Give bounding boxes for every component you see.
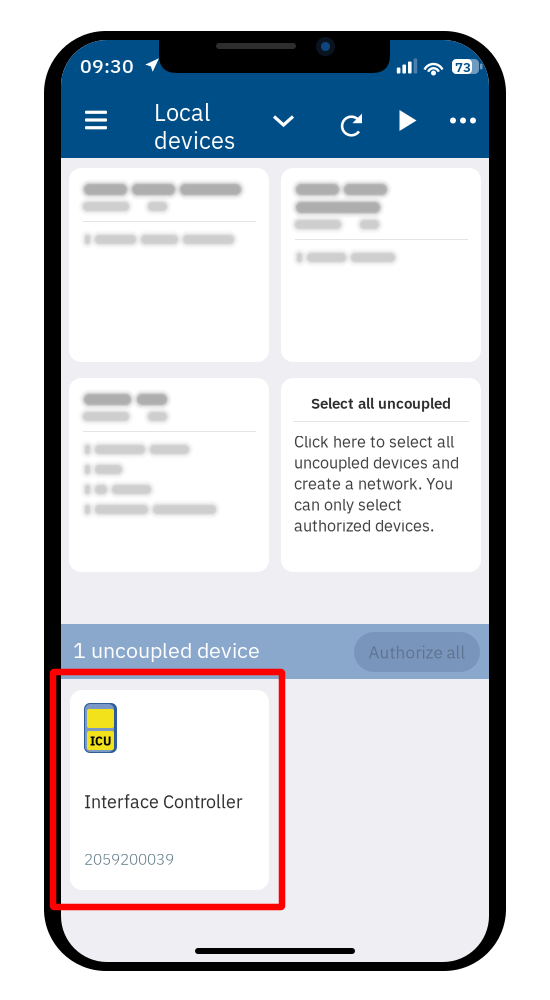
staticText: 09:30 <box>80 53 134 78</box>
button[interactable]: Play <box>398 109 418 132</box>
staticText: Select all uncoupled <box>311 393 451 413</box>
button[interactable]: More options <box>450 117 476 124</box>
button[interactable]: Expand <box>272 114 296 128</box>
staticText: Click here to select all <box>294 431 454 452</box>
staticText: ICU <box>90 732 111 749</box>
staticText: devices <box>154 125 235 155</box>
button[interactable]: Select all uncoupled <box>281 378 481 572</box>
staticText: uncoupled devices and <box>294 452 459 473</box>
staticText: Interface Controller <box>84 790 243 813</box>
button[interactable]: Authorize all <box>354 632 480 672</box>
staticText: 2059200039 <box>84 849 174 869</box>
staticText: create a network. You <box>294 473 453 494</box>
button[interactable]: Refresh <box>340 112 366 138</box>
staticText: Local <box>154 97 210 127</box>
button[interactable]: Menu <box>82 107 110 133</box>
button[interactable]: ICU <box>70 690 269 890</box>
staticText: 73 <box>455 58 471 76</box>
staticText: authorized devices. <box>294 515 434 536</box>
staticText: can only select <box>294 494 402 515</box>
staticText: Authorize all <box>368 641 465 663</box>
staticText: 1 uncoupled device <box>73 636 260 664</box>
